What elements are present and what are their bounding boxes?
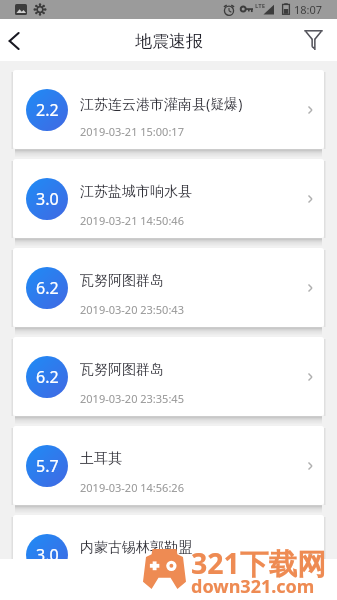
button[interactable]: 5.7	[13, 426, 324, 505]
staticText: 瓦努阿图群岛	[80, 272, 164, 290]
staticText: 3.0	[36, 188, 59, 210]
button[interactable]: 3.0	[13, 159, 324, 238]
staticText: 土耳其	[80, 450, 122, 468]
button[interactable]: 6.2	[13, 248, 324, 327]
staticText: LTE	[255, 2, 266, 10]
staticText: 江苏连云港市灌南县(疑爆)	[80, 94, 243, 113]
staticText: 6.2	[36, 366, 59, 388]
staticText: 6.2	[36, 277, 59, 299]
staticText: 2019-03-20 23:35:45	[80, 391, 184, 406]
button[interactable]: Back	[0, 19, 38, 61]
button[interactable]: 2.2	[13, 70, 324, 149]
staticText: 2.2	[36, 99, 59, 121]
staticText: 18:07	[294, 2, 323, 17]
button[interactable]: Filter	[299, 19, 337, 61]
staticText: 321下载网	[191, 544, 326, 583]
button[interactable]: 6.2	[13, 337, 324, 416]
staticText: 2019-03-20 14:56:26	[80, 480, 184, 495]
staticText: 5.7	[36, 455, 59, 477]
staticText: 2019-03-21 14:50:46	[80, 213, 184, 228]
staticText: 2019-03-20 23:50:43	[80, 302, 184, 317]
staticText: 地震速报	[135, 31, 203, 52]
staticText: 内蒙古锡林郭勒盟	[80, 539, 192, 557]
staticText: 2019-03-21 15:00:17	[80, 124, 184, 139]
staticText: 瓦努阿图群岛	[80, 361, 164, 379]
staticText: 3.0	[36, 544, 59, 566]
button[interactable]: 3.0	[13, 515, 324, 594]
staticText: down321.com	[191, 574, 315, 599]
staticText: 2019-03-20 11:22:18	[80, 569, 184, 584]
staticText: 江苏盐城市响水县	[80, 183, 192, 201]
